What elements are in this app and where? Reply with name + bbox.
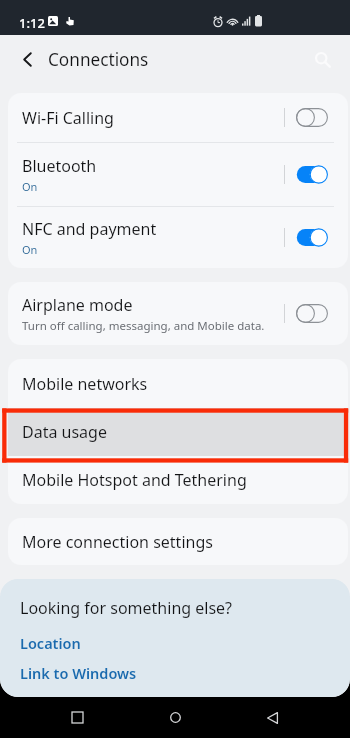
staticText: Airplane mode (22, 294, 133, 316)
button[interactable]: Mobile networks (8, 359, 348, 408)
button[interactable]: Bluetooth (8, 143, 348, 206)
button[interactable]: Back (252, 697, 293, 738)
staticText: Turn off calling, messaging, and Mobile … (22, 318, 265, 334)
button[interactable]: Off (296, 108, 328, 127)
button[interactable]: Location (20, 633, 81, 653)
button[interactable]: Data usage (8, 408, 348, 456)
staticText: Bluetooth (22, 155, 97, 177)
button[interactable]: Navigate up (0, 35, 45, 84)
staticText: More connection settings (22, 531, 213, 553)
button[interactable]: Off (296, 304, 328, 323)
staticText: 1:12 (19, 14, 45, 32)
button[interactable]: On (296, 165, 328, 184)
button[interactable]: NFC and payment (8, 207, 348, 268)
button[interactable]: Home (155, 697, 196, 738)
staticText: Data usage (22, 421, 107, 443)
button[interactable]: More connection settings (8, 518, 348, 565)
staticText: NFC and payment (22, 218, 157, 240)
button[interactable]: Mobile Hotspot and Tethering (8, 456, 348, 504)
button[interactable]: Wi-Fi Calling (8, 93, 348, 142)
button[interactable]: On (296, 228, 328, 247)
button[interactable]: Recents (57, 697, 98, 738)
button[interactable]: Airplane mode (8, 282, 348, 345)
staticText: Looking for something else? (20, 597, 233, 619)
staticText: On (22, 242, 38, 257)
staticText: Wi-Fi Calling (22, 107, 114, 129)
staticText: On (22, 179, 38, 194)
button[interactable]: Link to Windows (20, 663, 137, 683)
staticText: Connections (48, 48, 149, 71)
staticText: Mobile networks (22, 373, 148, 395)
staticText: Mobile Hotspot and Tethering (22, 469, 247, 491)
